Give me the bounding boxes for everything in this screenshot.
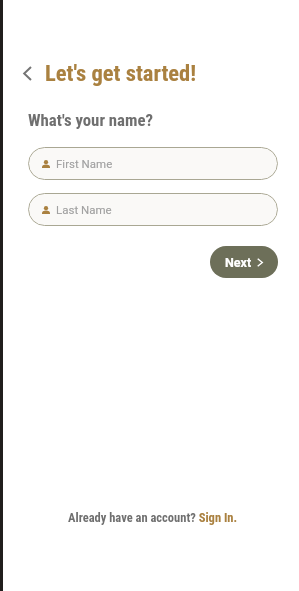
other: Person: [42, 160, 50, 168]
staticText: Next: [225, 255, 252, 270]
button[interactable]: Already have an account? Sign In.: [66, 510, 240, 525]
staticText: Let's get started!: [45, 60, 197, 86]
staticText: Last Name: [56, 203, 112, 216]
button[interactable]: Back: [16, 62, 38, 84]
button[interactable]: Person: [28, 147, 278, 180]
button[interactable]: Person: [28, 193, 278, 226]
other: Person: [42, 206, 50, 214]
staticText: What's your name?: [28, 110, 154, 130]
staticText: First Name: [56, 157, 113, 170]
button[interactable]: Next: [210, 246, 278, 278]
